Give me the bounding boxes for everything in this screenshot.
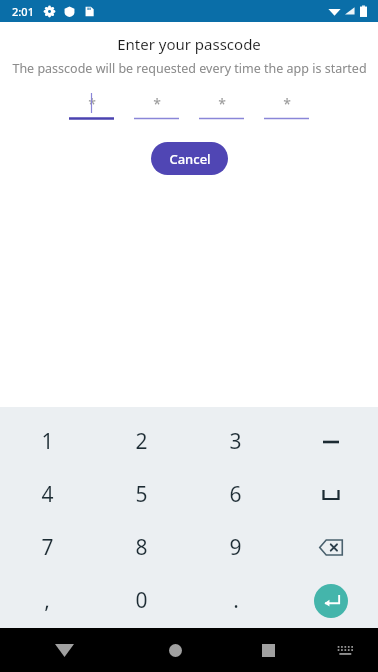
button[interactable]: 4	[0, 468, 94, 521]
button[interactable]: 7	[0, 521, 94, 574]
button[interactable]: Back	[0, 628, 128, 672]
button[interactable]: .	[188, 574, 283, 627]
button[interactable]: *	[199, 93, 244, 120]
button[interactable]: Switch keyboard	[313, 628, 378, 672]
staticText: 3	[229, 427, 242, 456]
button[interactable]: 5	[94, 468, 188, 521]
button[interactable]: *	[69, 93, 114, 120]
staticText: 9	[229, 533, 242, 562]
staticText: Enter your passcode	[117, 34, 261, 54]
button[interactable]: 8	[94, 521, 188, 574]
staticText: *	[283, 94, 291, 113]
button[interactable]: 3	[188, 415, 283, 468]
staticText: Cancel	[169, 150, 211, 168]
staticText: .	[233, 586, 239, 615]
button[interactable]: 1	[0, 415, 94, 468]
button[interactable]: *	[134, 93, 179, 120]
staticText: 1	[41, 427, 54, 456]
staticText: 5	[135, 480, 148, 509]
button[interactable]: 0	[94, 574, 188, 627]
staticText: *	[153, 94, 161, 113]
staticText: 6	[229, 480, 242, 509]
button[interactable]: Recent apps	[223, 628, 313, 672]
staticText: 2:01	[12, 4, 34, 19]
button[interactable]: 2	[94, 415, 188, 468]
staticText: 8	[135, 533, 148, 562]
staticText: 2	[135, 427, 148, 456]
button[interactable]: Home	[128, 628, 223, 672]
button[interactable]: Minus	[283, 415, 378, 468]
button[interactable]: *	[264, 93, 309, 120]
staticText: The passcode will be requested every tim…	[12, 60, 367, 77]
staticText: *	[218, 94, 226, 113]
button[interactable]: 9	[188, 521, 283, 574]
staticText: 7	[41, 533, 54, 562]
button[interactable]: Space	[283, 468, 378, 521]
staticText: 4	[41, 480, 54, 509]
button[interactable]: Backspace	[283, 521, 378, 574]
staticText: ,	[44, 586, 50, 615]
button[interactable]: ,	[0, 574, 94, 627]
button[interactable]: Enter	[283, 574, 378, 627]
staticText: *	[88, 94, 96, 113]
button[interactable]: 6	[188, 468, 283, 521]
button[interactable]: Cancel	[151, 142, 228, 175]
staticText: 0	[135, 586, 148, 615]
